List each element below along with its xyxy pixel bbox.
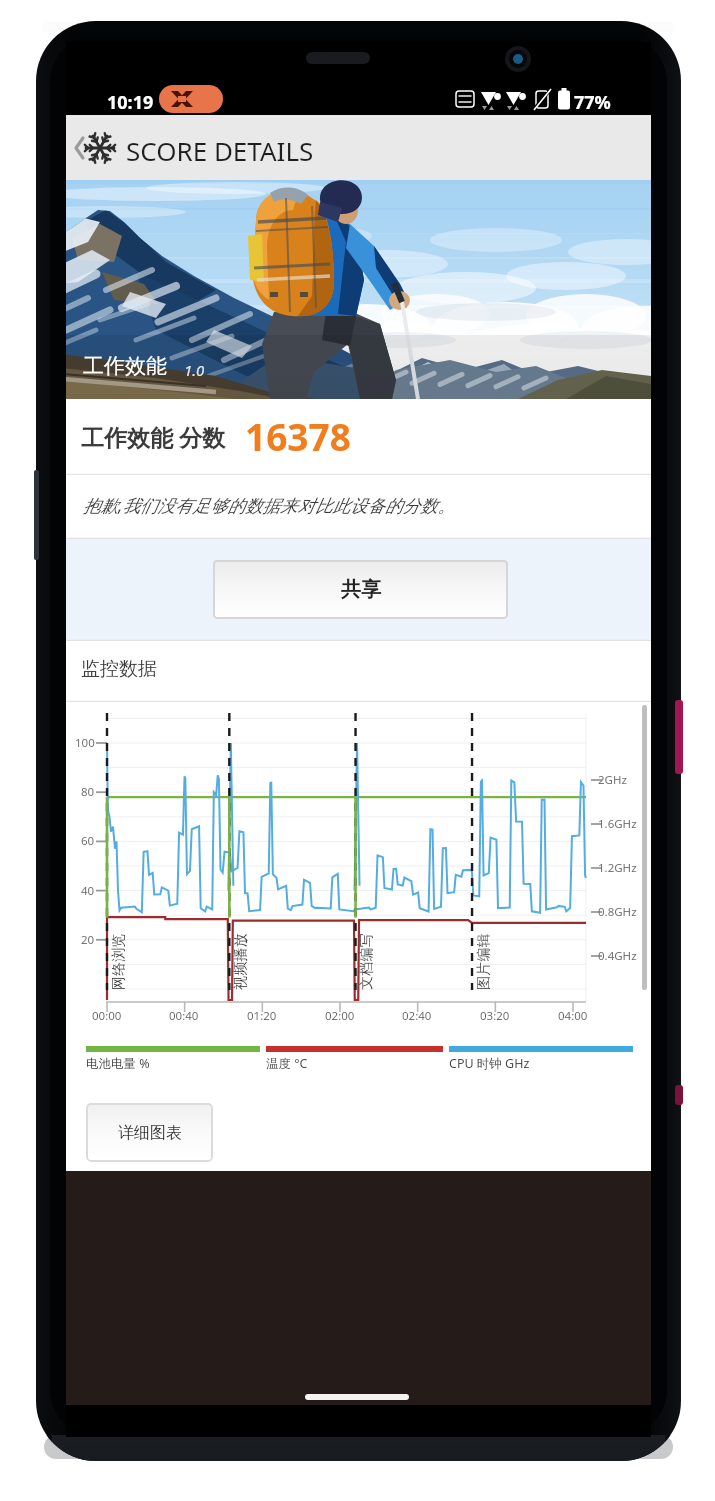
button[interactable]: 详细图表 xyxy=(86,1103,213,1162)
button[interactable]: Back xyxy=(70,122,122,174)
staticText: 03:20 xyxy=(480,1008,510,1024)
staticText: SCORE DETAILS xyxy=(126,133,314,168)
staticText: 04:00 xyxy=(558,1008,588,1024)
staticText: 1.0 xyxy=(184,360,205,380)
staticText: 100 xyxy=(75,735,95,751)
staticText: 40 xyxy=(81,883,95,899)
staticText: 1.2GHz xyxy=(598,860,637,876)
staticText: 20 xyxy=(81,932,95,948)
staticText: 01:20 xyxy=(247,1008,277,1024)
staticText: 02:40 xyxy=(402,1008,432,1024)
staticText: 监控数据 xyxy=(81,657,157,681)
staticText: 1.6GHz xyxy=(598,816,637,832)
staticText: 电池电量 % xyxy=(86,1055,150,1072)
staticText: 网络浏览 xyxy=(110,933,128,990)
button[interactable] xyxy=(66,115,651,180)
staticText: 温度 °C xyxy=(266,1055,308,1072)
staticText: 图片编辑 xyxy=(475,933,493,990)
staticText: 77% xyxy=(574,90,611,115)
staticText: 10:19 xyxy=(107,90,154,115)
staticText: 60 xyxy=(81,833,95,849)
staticText: 文档编写 xyxy=(358,933,376,990)
staticText: CPU 时钟 GHz xyxy=(449,1055,530,1072)
staticText: 工作效能 分数 xyxy=(81,421,225,452)
staticText: 工作效能 xyxy=(83,353,167,379)
staticText: 80 xyxy=(81,784,95,800)
staticText: 0.8GHz xyxy=(598,904,637,920)
staticText: 00:00 xyxy=(92,1008,122,1024)
staticText: 2GHz xyxy=(598,772,627,788)
staticText: 02:00 xyxy=(325,1008,355,1024)
staticText: 视频播放 xyxy=(232,933,250,990)
staticText: 详细图表 xyxy=(118,1123,182,1143)
staticText: 0.4GHz xyxy=(598,948,637,964)
button[interactable]: 共享 xyxy=(213,560,508,619)
staticText: 共享 xyxy=(341,577,381,602)
staticText: 00:40 xyxy=(169,1008,199,1024)
staticText: 抱歉,我们没有足够的数据来对比此设备的分数。 xyxy=(83,493,455,517)
staticText: 16378 xyxy=(245,411,351,461)
